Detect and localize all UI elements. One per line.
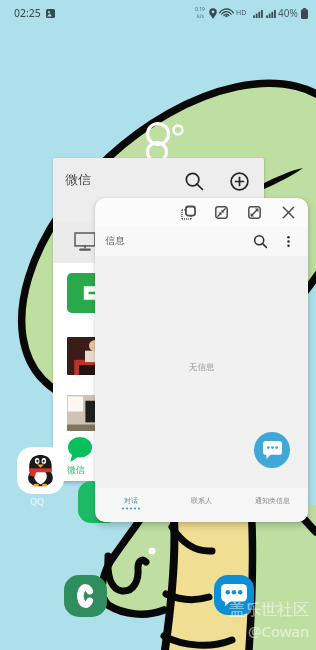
staticText: HD	[236, 8, 247, 18]
staticText: k/s	[197, 13, 204, 20]
staticText: @Cowan	[248, 621, 310, 641]
staticText: 联系人	[191, 496, 212, 505]
staticText: 40%	[278, 6, 298, 20]
staticText: 对话	[124, 496, 138, 505]
staticText: 信息	[105, 234, 125, 247]
button[interactable]: Phone	[64, 575, 107, 617]
button[interactable]: More options	[278, 231, 298, 251]
button[interactable]: QQ	[17, 447, 64, 494]
staticText: QQ	[30, 495, 45, 507]
button[interactable]: Expand	[244, 202, 264, 222]
button[interactable]: Close	[278, 202, 298, 222]
button[interactable]: Search	[180, 167, 208, 195]
staticText: 02:25	[14, 6, 41, 20]
staticText: 0.19	[195, 6, 205, 13]
button[interactable]: 联系人	[166, 488, 237, 522]
staticText: 微信	[67, 464, 85, 475]
button[interactable]: Search	[250, 231, 270, 251]
button[interactable]: Pop up view	[178, 202, 198, 222]
button[interactable]: 通知类信息	[237, 488, 308, 522]
button[interactable]: New conversation	[254, 432, 290, 468]
button[interactable]: Messages	[214, 575, 254, 615]
button[interactable]: Add	[225, 167, 253, 195]
staticText: 通知类信息	[255, 496, 290, 505]
staticText: 无信息	[189, 362, 215, 373]
button[interactable]: 对话	[95, 488, 166, 522]
staticText: 微信	[65, 171, 91, 187]
staticText: 盖乐世社区	[229, 600, 309, 620]
button[interactable]: WeChat	[78, 481, 120, 523]
button[interactable]: Shrink	[211, 202, 231, 222]
